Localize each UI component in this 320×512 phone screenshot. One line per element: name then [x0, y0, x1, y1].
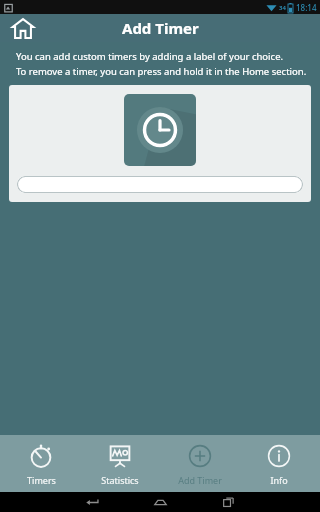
staticText: Timers: [27, 474, 56, 486]
button[interactable]: Timer label input: [17, 176, 303, 193]
button[interactable]: Add Timer: [162, 435, 238, 492]
button[interactable]: Recent apps: [205, 492, 251, 512]
staticText: Add Timer: [122, 18, 199, 38]
staticText: Add Timer: [178, 474, 222, 486]
staticText: To remove a timer, you can press and hol…: [16, 65, 307, 78]
button[interactable]: Back: [69, 492, 115, 512]
staticText: 34: [279, 4, 286, 12]
button[interactable]: Info: [241, 435, 317, 492]
staticText: You can add custom timers by adding a la…: [16, 50, 284, 63]
button[interactable]: Statistics: [82, 435, 158, 492]
button[interactable]: Timer icon: [124, 94, 196, 166]
button[interactable]: Home: [6, 14, 40, 42]
button[interactable]: Home: [137, 492, 183, 512]
staticText: Statistics: [101, 474, 139, 486]
staticText: Info: [270, 474, 288, 486]
button[interactable]: Timers: [3, 435, 79, 492]
staticText: 18:14: [296, 2, 317, 13]
